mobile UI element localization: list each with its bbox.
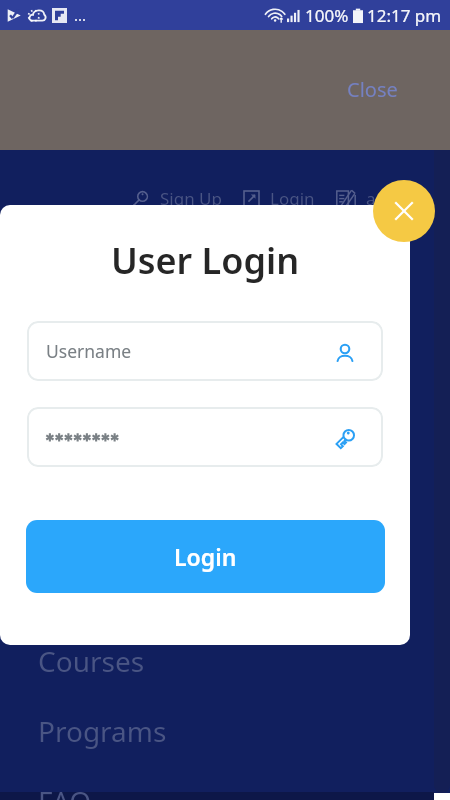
staticText: ... xyxy=(74,5,87,25)
staticText: 100% xyxy=(305,4,349,27)
button[interactable]: Courses xyxy=(0,626,450,696)
staticText: Login xyxy=(174,541,237,572)
staticText: a xyxy=(366,187,376,210)
button[interactable]: Login xyxy=(26,520,385,593)
staticText: FAQ xyxy=(38,782,92,800)
button[interactable]: Close xyxy=(373,180,435,242)
button[interactable]: Programs xyxy=(0,696,450,766)
button[interactable]: FAQ xyxy=(0,766,450,800)
button[interactable]: Login xyxy=(243,187,315,210)
button[interactable]: Sign Up xyxy=(129,187,222,210)
staticText: User Login xyxy=(0,236,410,285)
button[interactable]: a xyxy=(336,187,376,210)
staticText: Programs xyxy=(38,712,167,750)
staticText: Username xyxy=(46,339,132,363)
staticText: 12:17 pm xyxy=(367,4,442,27)
button[interactable]: Close xyxy=(347,76,398,103)
staticText: Login xyxy=(270,187,315,210)
button[interactable]: Username xyxy=(27,321,383,381)
button[interactable] xyxy=(27,407,383,467)
staticText: Close xyxy=(347,76,398,103)
staticText: Courses xyxy=(38,642,145,680)
staticText: Sign Up xyxy=(160,187,222,210)
